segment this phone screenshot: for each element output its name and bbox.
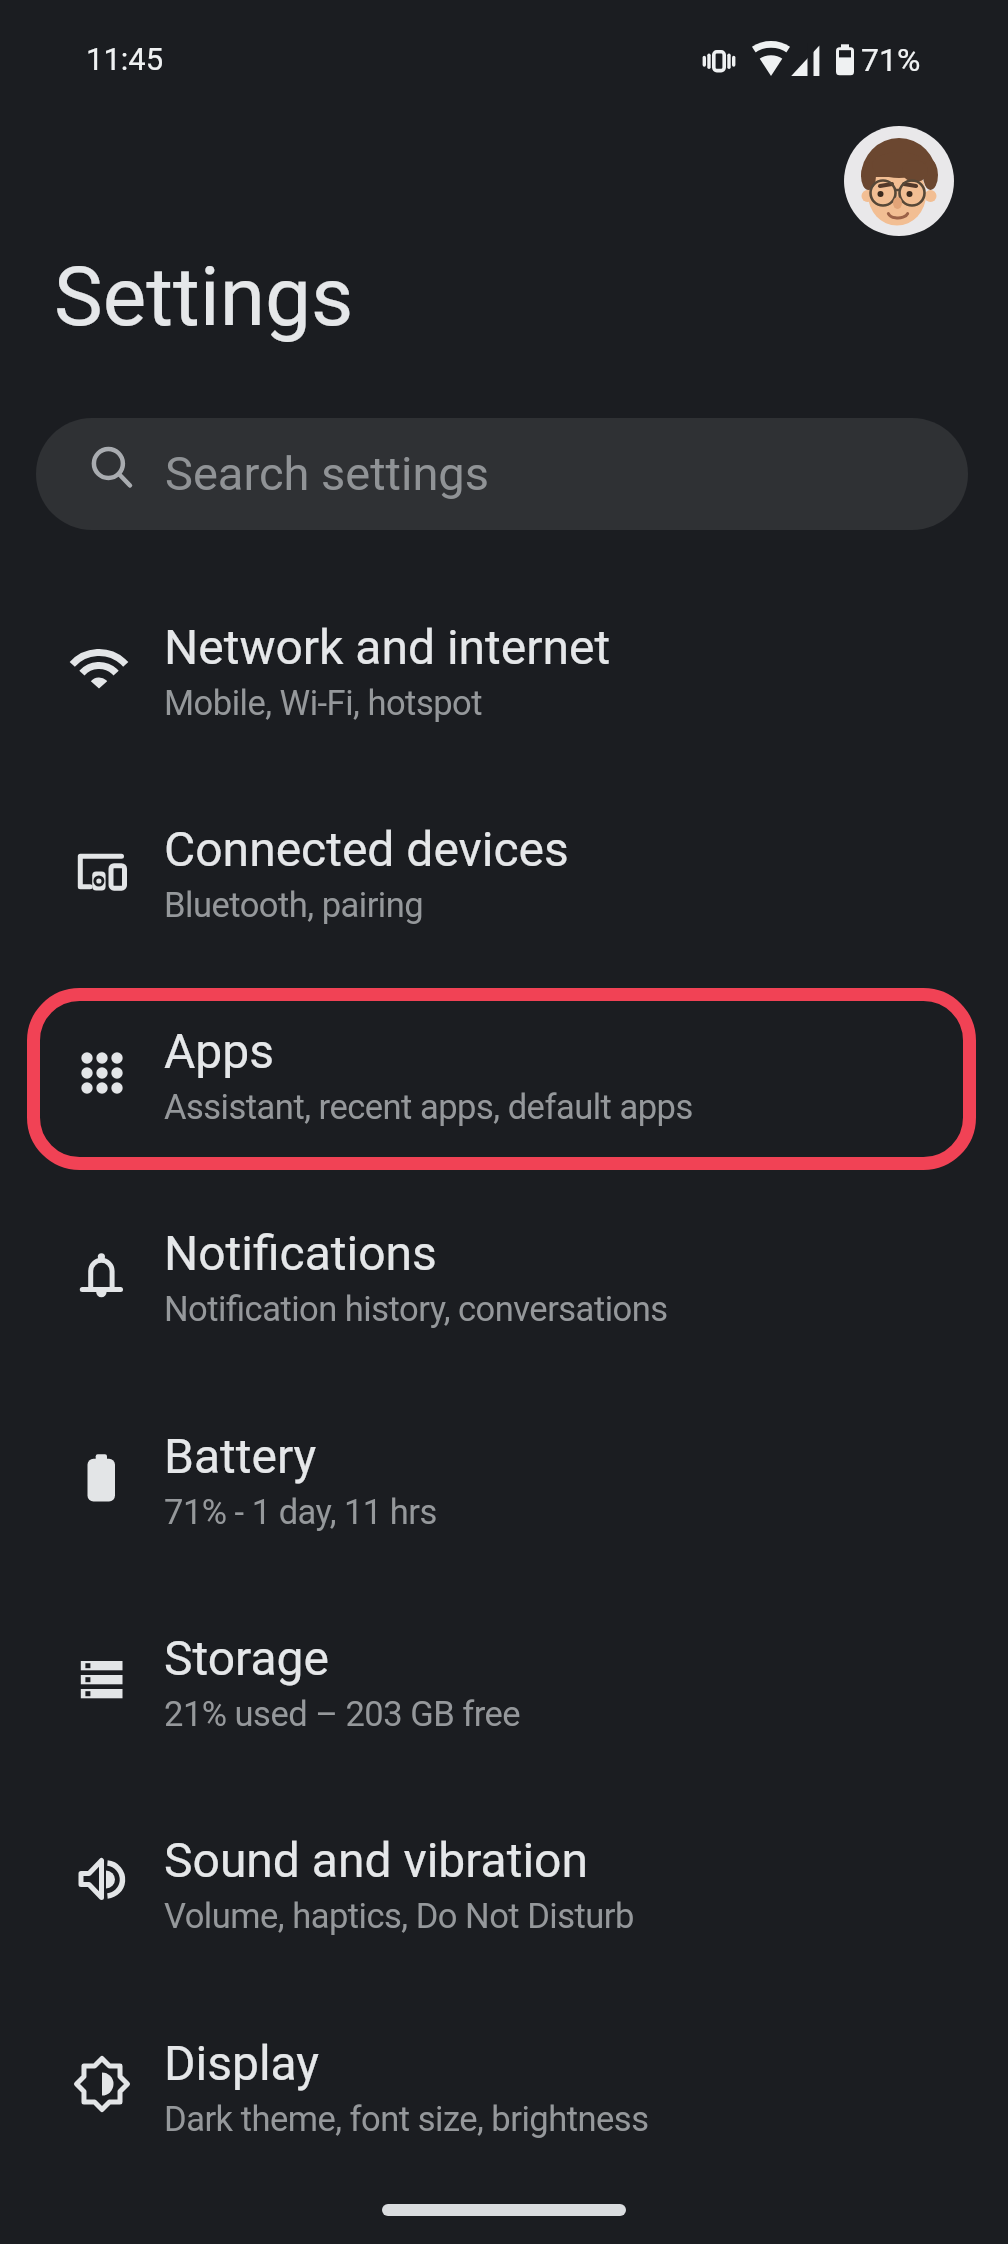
button[interactable] [0, 574, 1008, 776]
button[interactable] [0, 1181, 1008, 1383]
button[interactable] [0, 1990, 1008, 2192]
staticText: 21% used – 203 GB free [164, 1694, 521, 1734]
staticText: Bluetooth, pairing [164, 885, 424, 925]
button[interactable] [0, 1586, 1008, 1788]
button[interactable] [36, 418, 968, 530]
staticText: Apps [164, 1023, 274, 1079]
staticText: Volume, haptics, Do Not Disturb [164, 1896, 634, 1936]
staticText: Assistant, recent apps, default apps [164, 1087, 693, 1127]
staticText: 71% [861, 41, 921, 79]
staticText: Search settings [165, 446, 489, 501]
staticText: Settings [54, 249, 354, 345]
staticText: 71% - 1 day, 11 hrs [164, 1492, 437, 1532]
button[interactable] [844, 126, 954, 236]
staticText: Storage [164, 1630, 329, 1686]
staticText: Mobile, Wi-Fi, hotspot [164, 683, 483, 723]
button[interactable] [0, 1788, 1008, 1990]
staticText: Battery [164, 1428, 317, 1484]
button[interactable] [0, 776, 1008, 978]
staticText: Sound and vibration [164, 1832, 588, 1888]
staticText: 11:45 [86, 41, 164, 77]
button[interactable] [0, 1383, 1008, 1585]
staticText: Notification history, conversations [164, 1289, 668, 1329]
staticText: Notifications [164, 1225, 437, 1281]
staticText: Display [164, 2035, 320, 2091]
staticText: Connected devices [164, 821, 569, 877]
staticText: Dark theme, font size, brightness [164, 2099, 649, 2139]
staticText: Network and internet [164, 619, 611, 675]
button[interactable] [0, 979, 1008, 1181]
